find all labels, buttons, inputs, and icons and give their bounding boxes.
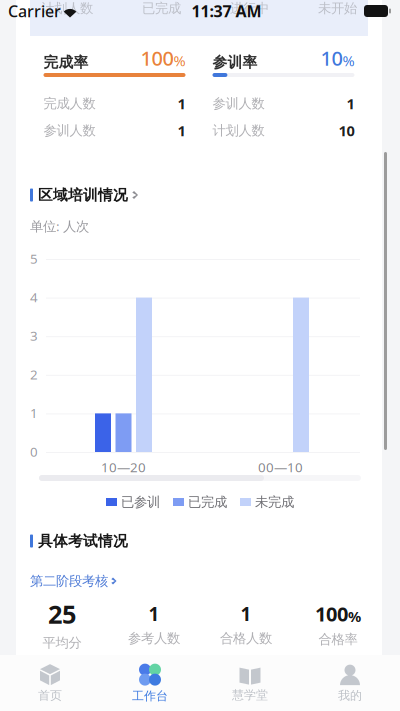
staticText: 25 bbox=[48, 597, 76, 631]
staticText: 1 bbox=[148, 601, 159, 626]
button[interactable]: 第二阶段考核 bbox=[0, 572, 400, 590]
staticText: % bbox=[348, 607, 361, 626]
staticText: 工作台 bbox=[132, 689, 168, 703]
staticText: 慧学堂 bbox=[232, 688, 268, 702]
staticText: Carrier bbox=[8, 0, 61, 22]
staticText: 平均分 bbox=[42, 635, 81, 651]
staticText: 参考人数 bbox=[128, 630, 180, 647]
button[interactable]: 具体考试情况 bbox=[0, 528, 400, 554]
staticText: 合格率 bbox=[318, 631, 357, 647]
staticText: 11:37 AM bbox=[191, 0, 261, 22]
staticText: 参训人数 bbox=[212, 95, 264, 112]
button[interactable]: 首页 bbox=[0, 655, 100, 711]
staticText: 00—10 bbox=[258, 458, 303, 476]
staticText: 完成率 bbox=[43, 53, 88, 71]
staticText: 5 bbox=[30, 250, 38, 267]
staticText: 计划人数 bbox=[41, 0, 93, 16]
staticText: 10 bbox=[338, 121, 354, 140]
staticText: 1 bbox=[30, 404, 38, 422]
staticText: 单位: 人次 bbox=[30, 217, 89, 235]
staticText: 0 bbox=[30, 443, 38, 460]
button[interactable]: 工作台 bbox=[100, 655, 200, 711]
staticText: 2 bbox=[30, 365, 38, 383]
staticText: % bbox=[342, 51, 354, 70]
staticText: 已完成 bbox=[142, 0, 181, 16]
button[interactable]: 我的 bbox=[300, 655, 400, 711]
staticText: 进行中 bbox=[230, 0, 269, 16]
staticText: 未完成 bbox=[255, 494, 294, 510]
staticText: 1 bbox=[177, 121, 185, 140]
staticText: 3 bbox=[30, 327, 38, 344]
staticText: 10—20 bbox=[101, 458, 146, 476]
staticText: % bbox=[173, 51, 185, 70]
staticText: 4 bbox=[30, 288, 38, 306]
staticText: 100 bbox=[140, 45, 173, 71]
staticText: 具体考试情况 bbox=[38, 532, 128, 550]
staticText: 未开始 bbox=[318, 0, 357, 16]
staticText: 完成人数 bbox=[43, 95, 95, 112]
staticText: 参训率 bbox=[212, 53, 257, 71]
staticText: 首页 bbox=[38, 688, 62, 703]
staticText: 合格人数 bbox=[220, 630, 272, 647]
staticText: 已参训 bbox=[121, 494, 160, 510]
staticText: 1 bbox=[346, 94, 354, 113]
staticText: 1 bbox=[240, 601, 251, 626]
staticText: 我的 bbox=[338, 688, 362, 703]
staticText: 参训人数 bbox=[43, 122, 95, 139]
button[interactable]: 区域培训情况 bbox=[0, 182, 400, 208]
staticText: 第二阶段考核 bbox=[30, 573, 108, 589]
button[interactable]: 慧学堂 bbox=[200, 655, 300, 711]
staticText: 100 bbox=[315, 600, 348, 627]
staticText: 1 bbox=[177, 94, 185, 113]
staticText: 已完成 bbox=[188, 494, 227, 510]
staticText: 计划人数 bbox=[212, 122, 264, 139]
staticText: 区域培训情况 bbox=[38, 186, 128, 204]
staticText: 10 bbox=[320, 45, 342, 71]
